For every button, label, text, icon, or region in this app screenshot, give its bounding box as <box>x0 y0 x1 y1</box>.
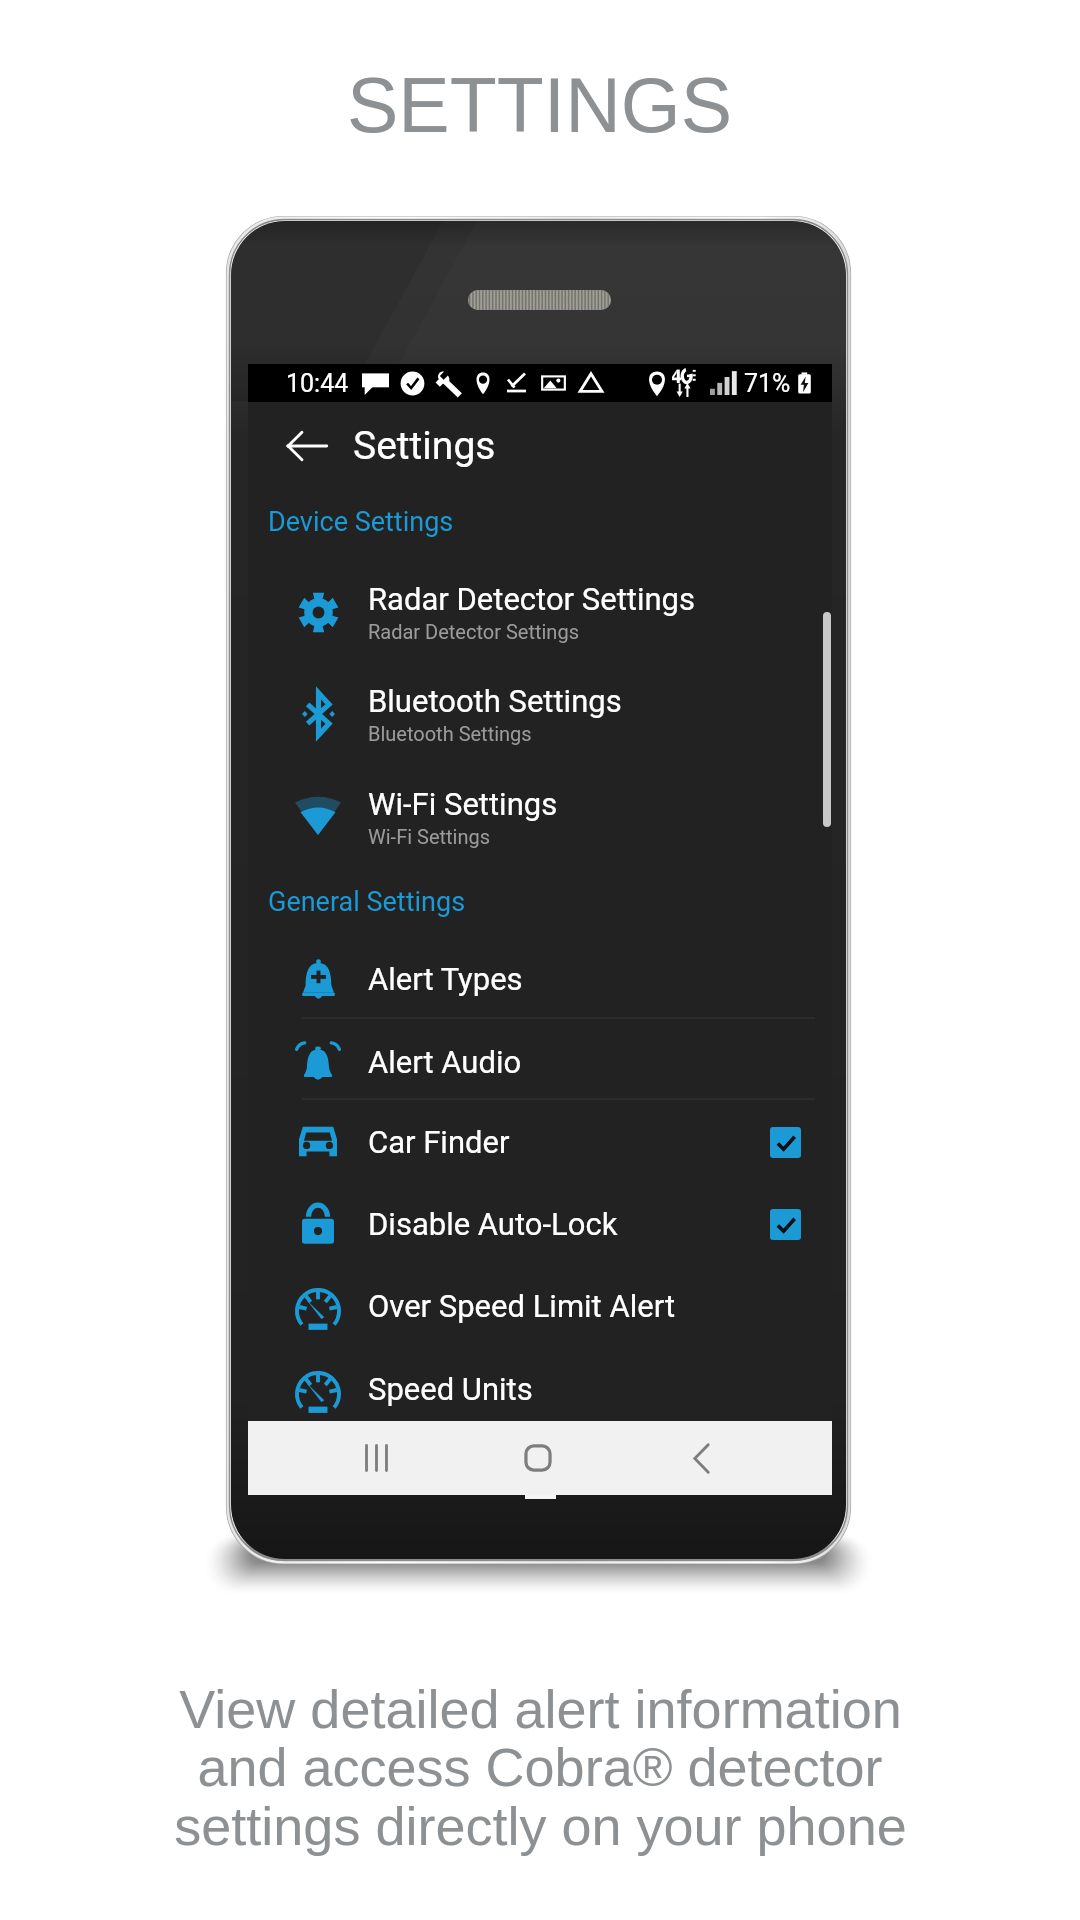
staticText: View detailed alert information <box>179 1679 902 1739</box>
button[interactable]: Radar Detector Settings <box>248 561 832 663</box>
button[interactable]: Over Speed Limit Alert <box>248 1265 832 1347</box>
button[interactable]: Back <box>651 1421 751 1495</box>
button[interactable]: Wi-Fi Settings <box>248 766 832 868</box>
staticText: Radar Detector Settings <box>368 620 579 643</box>
staticText: Radar Detector Settings <box>368 581 695 617</box>
button[interactable]: Back <box>284 406 330 486</box>
staticText: and access Cobra® detector <box>197 1737 883 1797</box>
staticText: SETTINGS <box>347 62 733 148</box>
staticText: Disable Auto-Lock <box>368 1206 618 1242</box>
staticText: 10:44 <box>286 369 349 398</box>
button[interactable]: Home <box>488 1421 588 1495</box>
staticText: settings directly on your phone <box>174 1796 907 1856</box>
button[interactable]: Bluetooth Settings <box>248 663 832 765</box>
staticText: Bluetooth Settings <box>368 722 532 745</box>
staticText: Device Settings <box>268 506 454 538</box>
button[interactable]: Alert Audio <box>248 1021 832 1103</box>
staticText: Alert Audio <box>368 1044 522 1080</box>
button[interactable]: Disable Auto-Lock <box>248 1183 832 1265</box>
staticText: 71% <box>744 369 791 398</box>
button[interactable]: Speed Units <box>248 1348 832 1430</box>
staticText: Alert Types <box>368 961 523 997</box>
button[interactable]: Alert Types <box>248 938 832 1020</box>
staticText: Over Speed Limit Alert <box>368 1288 676 1324</box>
button[interactable]: Car Finder <box>248 1101 832 1183</box>
staticText: Wi-Fi Settings <box>368 786 558 822</box>
staticText: Car Finder <box>368 1124 510 1160</box>
button[interactable]: Recent apps <box>326 1421 426 1495</box>
staticText: Bluetooth Settings <box>368 683 622 719</box>
staticText: Settings <box>353 423 496 469</box>
staticText: Speed Units <box>368 1371 533 1407</box>
staticText: General Settings <box>268 886 466 918</box>
staticText: Wi-Fi Settings <box>368 825 491 848</box>
